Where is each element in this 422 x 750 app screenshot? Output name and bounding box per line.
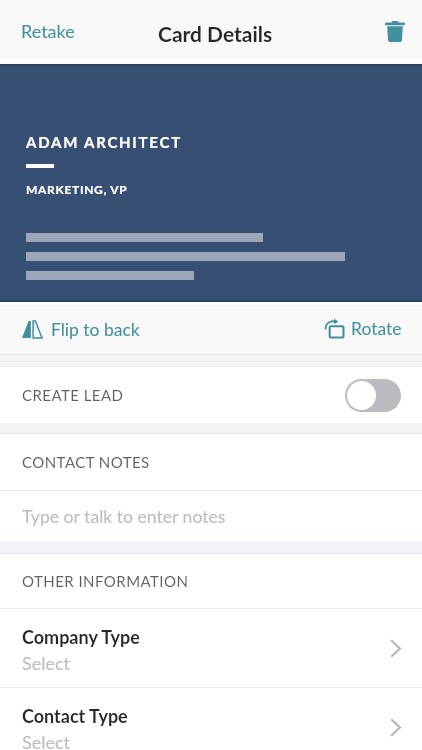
staticText: Flip to back xyxy=(51,319,140,340)
staticText: Select xyxy=(22,731,71,750)
button[interactable]: Retake xyxy=(0,7,96,55)
staticText: Company Type xyxy=(22,626,140,648)
staticText: MARKETING, VP xyxy=(26,182,128,196)
button[interactable]: Rotate xyxy=(307,311,422,349)
staticText: Retake xyxy=(21,20,75,42)
button[interactable]: Type or talk to enter notes xyxy=(0,491,422,541)
staticText: Card Details xyxy=(158,21,273,46)
button[interactable]: CREATE LEAD xyxy=(0,367,422,423)
staticText: Rotate xyxy=(351,318,402,339)
button[interactable]: Company Type xyxy=(0,609,422,687)
button[interactable]: Flip to back xyxy=(0,311,156,348)
button[interactable]: Contact Type xyxy=(0,688,422,750)
staticText: CONTACT NOTES xyxy=(22,453,150,471)
staticText: Select xyxy=(22,652,71,674)
staticText: Contact Type xyxy=(22,705,128,727)
staticText: CREATE LEAD xyxy=(22,386,124,404)
staticText: Type or talk to enter notes xyxy=(22,506,226,527)
button[interactable]: Delete xyxy=(369,7,422,56)
staticText: OTHER INFORMATION xyxy=(22,572,189,590)
staticText: ADAM ARCHITECT xyxy=(26,133,182,151)
